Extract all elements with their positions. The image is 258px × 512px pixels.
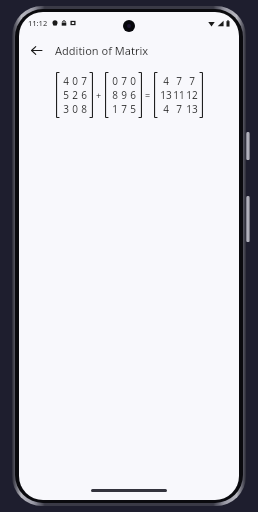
staticText: 7 <box>81 74 87 88</box>
staticText: 0 <box>130 74 136 88</box>
staticText: 6 <box>81 88 87 102</box>
staticText: 5 <box>130 102 136 116</box>
staticText: 7 <box>176 102 182 116</box>
staticText: 1 <box>112 102 118 116</box>
other: Power button <box>246 196 250 242</box>
staticText: 0 <box>72 102 78 116</box>
staticText: 11:12 <box>28 18 48 28</box>
staticText: 13 <box>160 88 172 102</box>
staticText: 2 <box>72 88 78 102</box>
staticText: 13 <box>186 102 198 116</box>
staticText: 8 <box>112 88 118 102</box>
staticText: 11 <box>173 88 185 102</box>
staticText: 8 <box>81 102 87 116</box>
staticText: 0 <box>112 74 118 88</box>
staticText: 6 <box>130 88 136 102</box>
staticText: 3 <box>63 102 69 116</box>
staticText: 7 <box>121 74 127 88</box>
staticText: 4 <box>63 74 69 88</box>
staticText: = <box>145 89 151 101</box>
other: Volume button <box>246 132 250 160</box>
staticText: 4 <box>163 102 169 116</box>
staticText: Addition of Matrix <box>55 43 149 58</box>
staticText: 4 <box>163 74 169 88</box>
staticText: 7 <box>189 74 195 88</box>
staticText: + <box>96 89 102 101</box>
staticText: 9 <box>121 88 127 102</box>
button[interactable]: Back <box>23 37 49 63</box>
staticText: 7 <box>176 74 182 88</box>
staticText: 12 <box>186 88 198 102</box>
staticText: 5 <box>63 88 69 102</box>
staticText: 7 <box>121 102 127 116</box>
staticText: 0 <box>72 74 78 88</box>
